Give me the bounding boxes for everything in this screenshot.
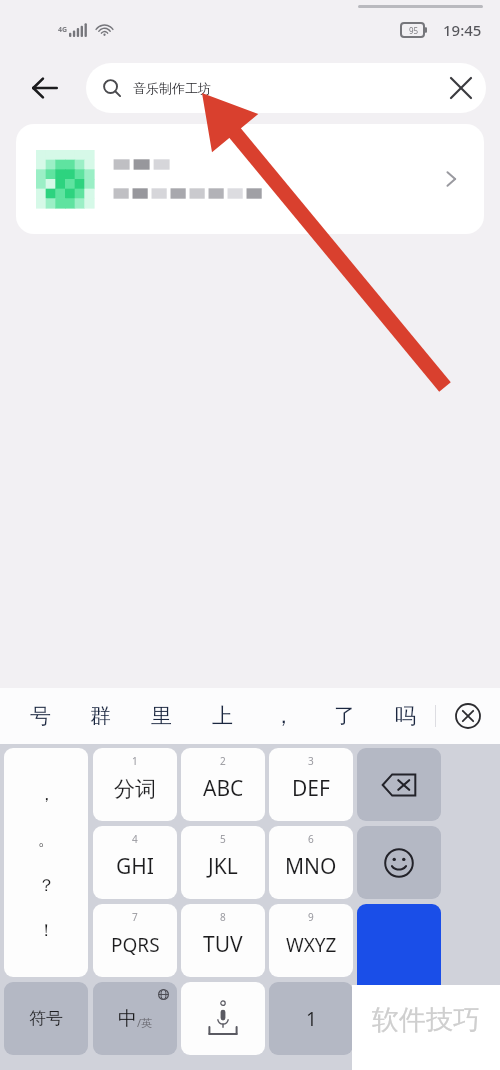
button[interactable]: 8 — [181, 904, 265, 977]
staticText: ！ — [38, 920, 55, 941]
button[interactable]: Next — [357, 904, 441, 1055]
staticText: 吗 — [395, 703, 416, 729]
button[interactable]: Backspace — [357, 748, 441, 821]
staticText: 3 — [308, 754, 314, 768]
staticText: 群 — [90, 703, 111, 729]
staticText: 分词 — [114, 776, 156, 802]
staticText: 里 — [151, 703, 172, 729]
button[interactable]: Back — [22, 65, 68, 111]
button[interactable]: Emoji — [357, 826, 441, 899]
button[interactable]: Symbols — [4, 982, 88, 1055]
button[interactable]: 音乐制作工坊 — [86, 63, 486, 113]
button[interactable]: 上 — [192, 688, 253, 744]
staticText: MNO — [285, 852, 337, 881]
staticText: 4 — [132, 832, 138, 846]
staticText: ， — [273, 703, 294, 729]
button[interactable]: 6 — [269, 826, 353, 899]
button[interactable]: Close candidates — [436, 688, 500, 744]
button[interactable]: 群 — [70, 688, 131, 744]
button[interactable]: 号 — [10, 688, 70, 744]
staticText: ABC — [203, 774, 244, 803]
button[interactable]: 5 — [181, 826, 265, 899]
button[interactable]: Number 1 — [269, 982, 353, 1055]
staticText: 号 — [30, 703, 51, 729]
button[interactable]: 吗 — [375, 688, 436, 744]
staticText: 。 — [38, 829, 55, 850]
staticText: 上 — [212, 703, 233, 729]
staticText: ， — [38, 784, 55, 805]
button[interactable]: Language — [93, 982, 177, 1055]
staticText: 19:45 — [443, 20, 482, 40]
staticText: 1 — [132, 754, 138, 768]
button[interactable]: 7 — [93, 904, 177, 977]
staticText: 6 — [308, 832, 314, 846]
staticText: 9 — [308, 910, 314, 924]
staticText: 4G — [58, 25, 68, 35]
staticText: /英 — [137, 1015, 153, 1030]
staticText: 下一项 — [377, 1010, 422, 1029]
button[interactable]: Punctuation — [4, 748, 88, 977]
staticText: DEF — [292, 774, 330, 803]
staticText: 95 — [409, 25, 419, 36]
staticText: 了 — [334, 703, 355, 729]
staticText: 软件技巧 — [372, 1003, 480, 1037]
button[interactable]: Clear — [440, 67, 482, 109]
staticText: 8 — [220, 910, 226, 924]
button[interactable]: 3 — [269, 748, 353, 821]
staticText: 音乐制作工坊 — [133, 80, 211, 96]
staticText: 2 — [220, 754, 226, 768]
staticText: TUV — [203, 930, 243, 959]
staticText: GHI — [116, 852, 154, 881]
staticText: JKL — [208, 852, 238, 881]
staticText: ？ — [38, 875, 55, 896]
button[interactable]: 4 — [93, 826, 177, 899]
button[interactable]: 1 — [93, 748, 177, 821]
button[interactable]: 2 — [181, 748, 265, 821]
staticText: WXYZ — [286, 932, 337, 958]
staticText: 5 — [220, 832, 226, 846]
button[interactable]: Space / Voice input — [181, 982, 265, 1055]
button[interactable]: 了 — [314, 688, 375, 744]
button[interactable]: 9 — [269, 904, 353, 977]
button[interactable]: 里 — [131, 688, 192, 744]
staticText: 7 — [132, 910, 138, 924]
staticText: 1 — [306, 1006, 317, 1032]
staticText: PQRS — [111, 932, 160, 958]
staticText: 符号 — [29, 1008, 63, 1029]
button[interactable]: ， — [253, 688, 314, 744]
staticText: 中 — [118, 1007, 137, 1031]
button[interactable] — [16, 124, 484, 234]
